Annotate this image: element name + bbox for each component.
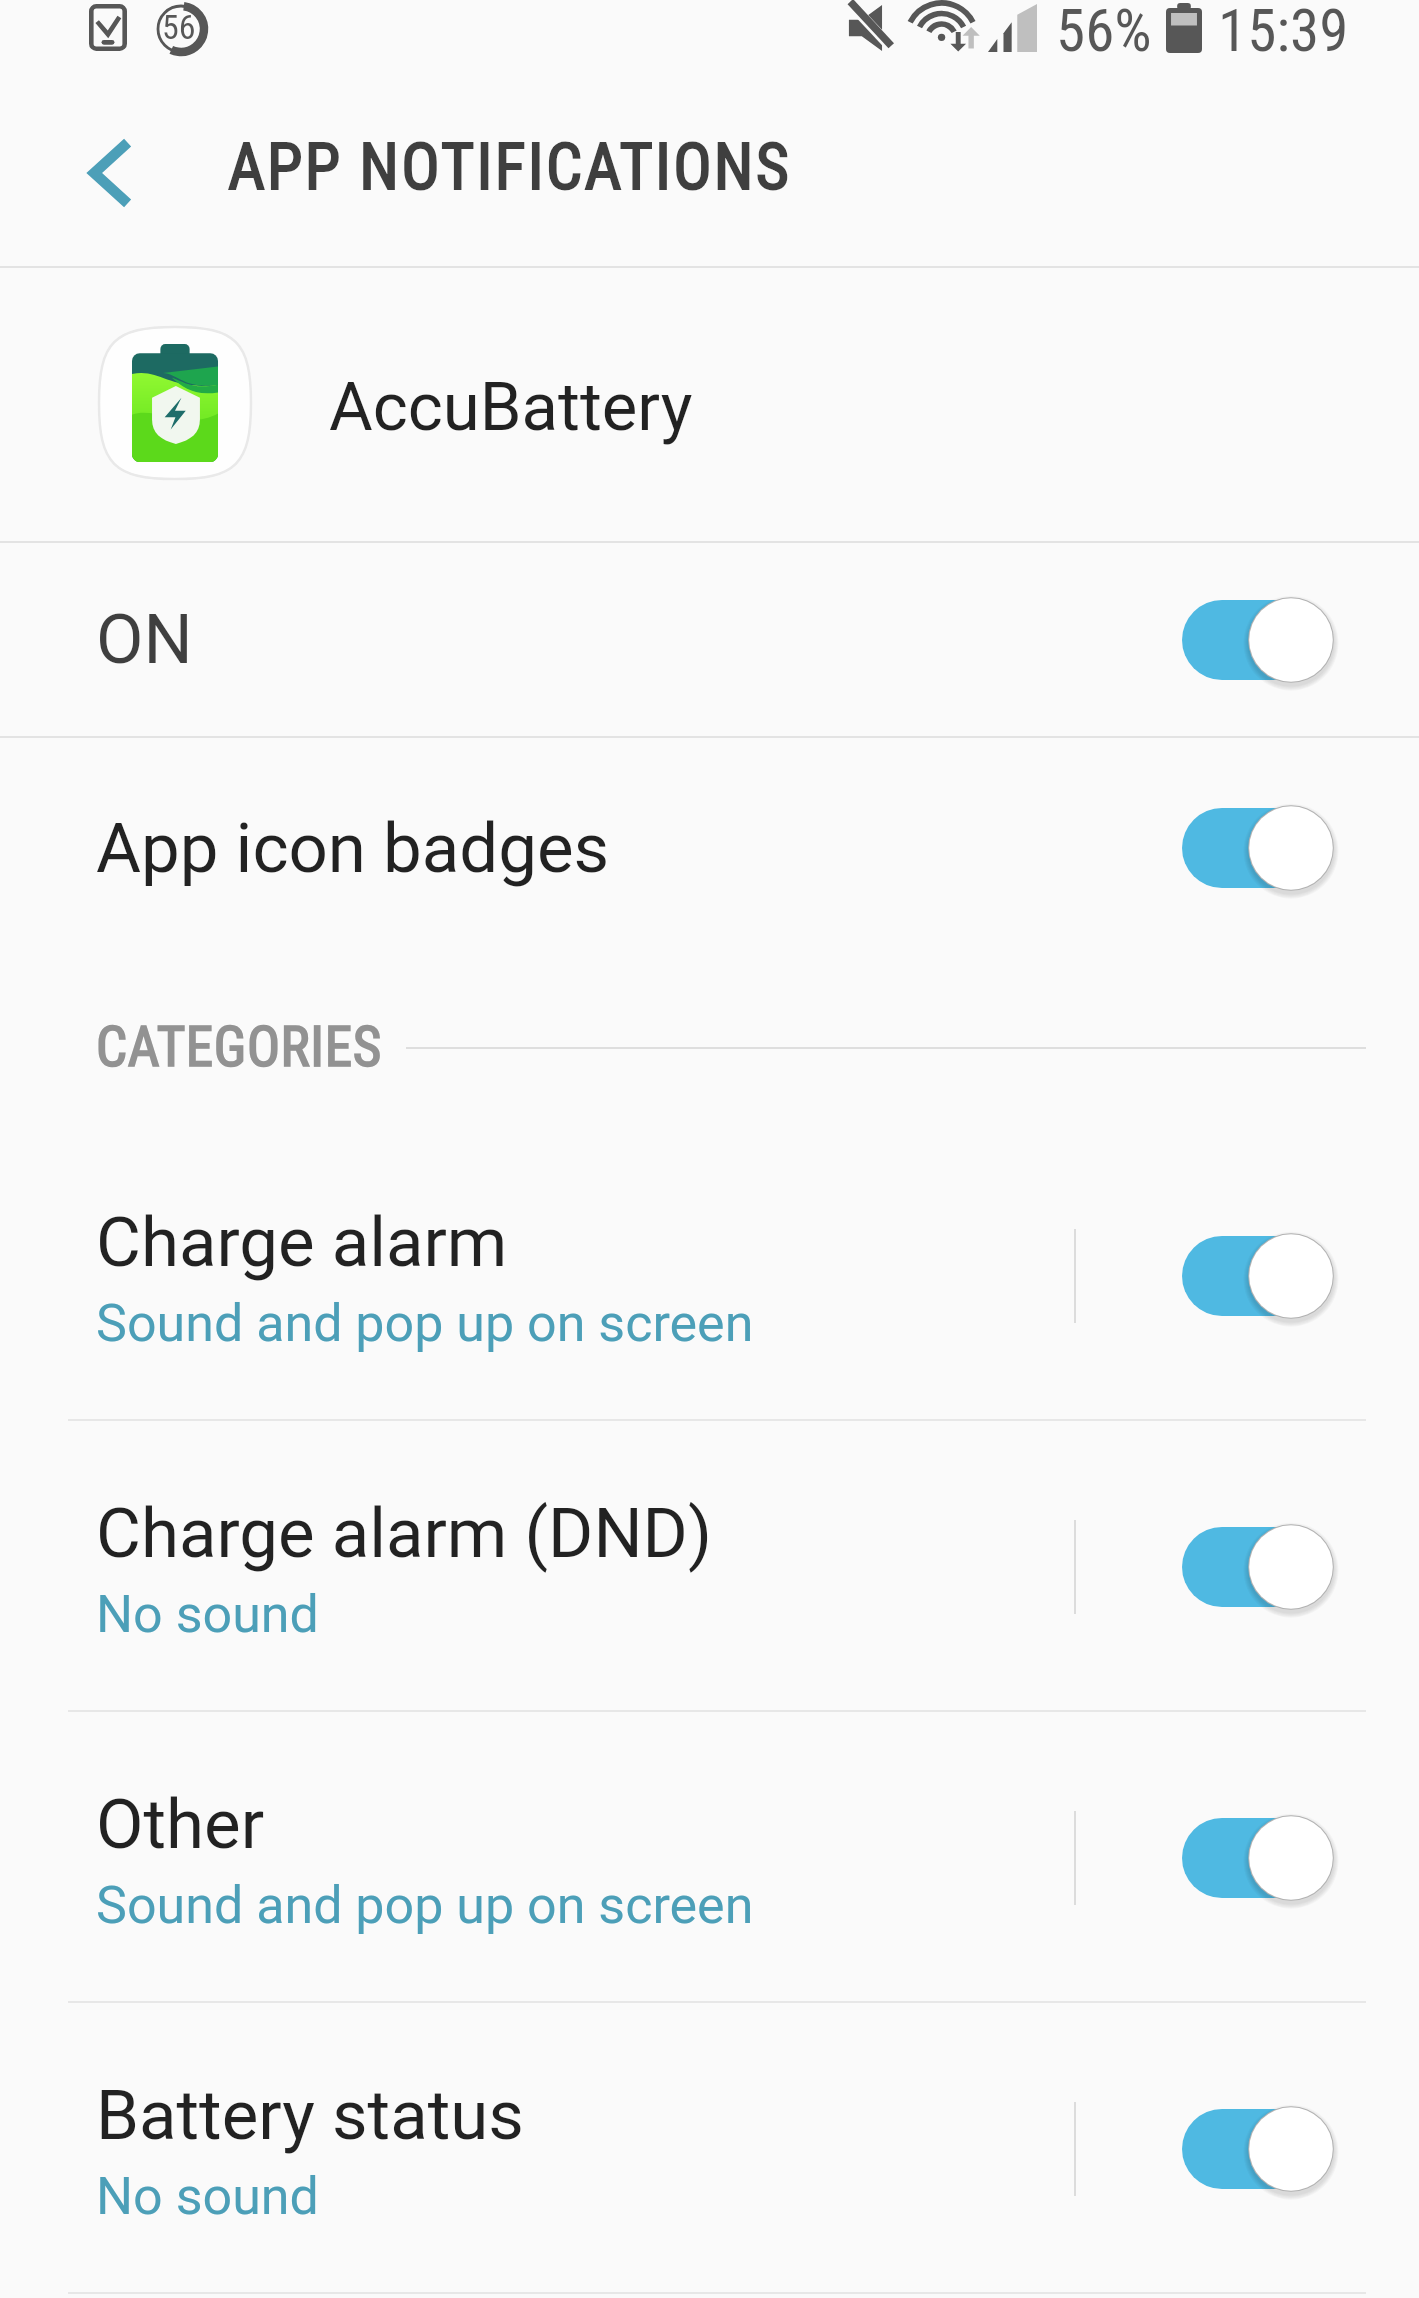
- staticText: App icon badges: [96, 808, 610, 889]
- button[interactable]: ON: [1182, 594, 1334, 686]
- button[interactable]: Charge alarm: [0, 1130, 1419, 1421]
- button[interactable]: App icon badges: [0, 738, 1419, 958]
- button[interactable]: Other: [1182, 1812, 1334, 1904]
- staticText: Sound and pop up on screen: [96, 1875, 754, 1936]
- button[interactable]: Charge alarm (DND): [0, 1421, 1419, 1712]
- button[interactable]: Battery status: [0, 2003, 1419, 2294]
- staticText: Charge alarm (DND): [96, 1493, 712, 1574]
- button[interactable]: ON: [0, 543, 1419, 736]
- staticText: Sound and pop up on screen: [96, 1293, 754, 1354]
- button[interactable]: AccuBattery: [0, 268, 1419, 541]
- staticText: APP NOTIFICATIONS: [228, 130, 792, 205]
- staticText: ON: [96, 599, 193, 680]
- staticText: 15:39: [1218, 0, 1349, 65]
- staticText: 56: [162, 7, 196, 47]
- button[interactable]: Battery status: [1182, 2103, 1334, 2195]
- staticText: Battery status: [96, 2075, 524, 2156]
- staticText: 56%: [1056, 0, 1152, 65]
- staticText: No sound: [96, 1584, 319, 1645]
- staticText: AccuBattery: [329, 368, 693, 447]
- button[interactable]: Navigate up: [61, 124, 159, 222]
- button[interactable]: Charge alarm: [1182, 1230, 1334, 1322]
- button[interactable]: Charge alarm (DND): [1182, 1521, 1334, 1613]
- button[interactable]: Other: [0, 1712, 1419, 2003]
- staticText: Charge alarm: [96, 1202, 508, 1283]
- staticText: Other: [96, 1784, 265, 1865]
- staticText: No sound: [96, 2166, 319, 2227]
- staticText: CATEGORIES: [96, 1015, 382, 1079]
- button[interactable]: App icon badges: [1182, 802, 1334, 894]
